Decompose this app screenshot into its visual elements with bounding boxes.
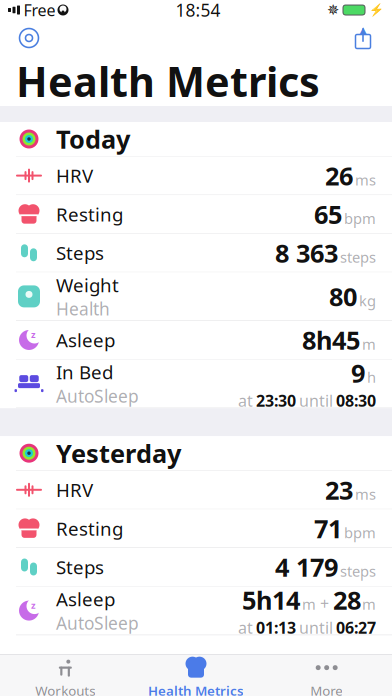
staticText: 8 363: [275, 236, 338, 270]
staticText: 9: [351, 356, 365, 390]
button[interactable]: In Bed: [0, 360, 392, 408]
staticText: 08:30: [336, 390, 376, 411]
staticText: z: [31, 599, 36, 611]
staticText: z: [31, 328, 36, 341]
staticText: 65: [314, 197, 342, 231]
staticText: Today: [56, 122, 130, 156]
staticText: Resting: [56, 202, 123, 227]
staticText: 71: [314, 512, 342, 545]
staticText: kg: [359, 291, 376, 310]
staticText: Health Metrics: [148, 682, 244, 696]
button[interactable]: Weight: [0, 272, 392, 321]
staticText: Steps: [56, 240, 104, 265]
staticText: m: [362, 334, 376, 354]
staticText: 23: [325, 473, 353, 507]
staticText: HRV: [56, 163, 93, 188]
staticText: More: [310, 682, 343, 696]
staticText: 18:54: [175, 0, 220, 21]
staticText: Workouts: [35, 682, 95, 696]
button[interactable]: Steps: [0, 234, 392, 272]
staticText: AutoSleep: [56, 384, 139, 407]
staticText: 4 179: [275, 550, 338, 584]
staticText: Resting: [56, 516, 123, 541]
staticText: Health: [56, 297, 110, 320]
staticText: Health Metrics: [16, 54, 320, 108]
staticText: In Bed: [56, 360, 113, 384]
staticText: at: [238, 390, 253, 411]
button[interactable]: z: [0, 587, 392, 635]
staticText: Asleep: [56, 328, 115, 352]
staticText: +: [320, 593, 329, 614]
staticText: ✵: [327, 2, 339, 18]
button[interactable]: Share: [346, 21, 380, 55]
staticText: bpm: [344, 209, 376, 228]
button[interactable]: Resting: [0, 195, 392, 234]
staticText: m: [362, 594, 376, 614]
staticText: 06:27: [336, 617, 376, 638]
staticText: HRV: [56, 477, 93, 502]
staticText: bpm: [344, 523, 376, 542]
staticText: steps: [340, 247, 376, 267]
staticText: at: [238, 617, 253, 638]
staticText: ms: [355, 170, 376, 189]
staticText: m: [302, 594, 316, 614]
staticText: 26: [325, 159, 353, 192]
staticText: steps: [340, 561, 376, 581]
staticText: Yesterday: [56, 436, 181, 470]
button[interactable]: z: [0, 321, 392, 360]
staticText: 8h45: [302, 323, 360, 357]
staticText: Free: [23, 0, 55, 21]
staticText: ⚡: [369, 3, 384, 17]
staticText: Steps: [56, 555, 104, 579]
staticText: h: [367, 367, 376, 387]
button[interactable]: HRV: [0, 157, 392, 195]
staticText: until: [299, 390, 333, 411]
button[interactable]: More: [261, 652, 392, 696]
button[interactable]: Health Metrics: [131, 652, 261, 696]
staticText: 28: [333, 583, 361, 617]
staticText: 01:13: [256, 617, 296, 638]
button[interactable]: Workouts: [0, 652, 131, 696]
button[interactable]: Settings: [12, 21, 46, 55]
staticText: until: [299, 617, 333, 638]
button[interactable]: Steps: [0, 548, 392, 587]
staticText: Asleep: [56, 587, 115, 611]
staticText: 23:30: [256, 390, 296, 411]
button[interactable]: HRV: [0, 471, 392, 509]
button[interactable]: Resting: [0, 509, 392, 548]
staticText: ▲: [359, 25, 366, 35]
staticText: ms: [355, 484, 376, 504]
staticText: Weight: [56, 272, 119, 297]
staticText: 5h14: [242, 583, 300, 617]
staticText: 80: [329, 280, 357, 313]
staticText: AutoSleep: [56, 611, 139, 634]
